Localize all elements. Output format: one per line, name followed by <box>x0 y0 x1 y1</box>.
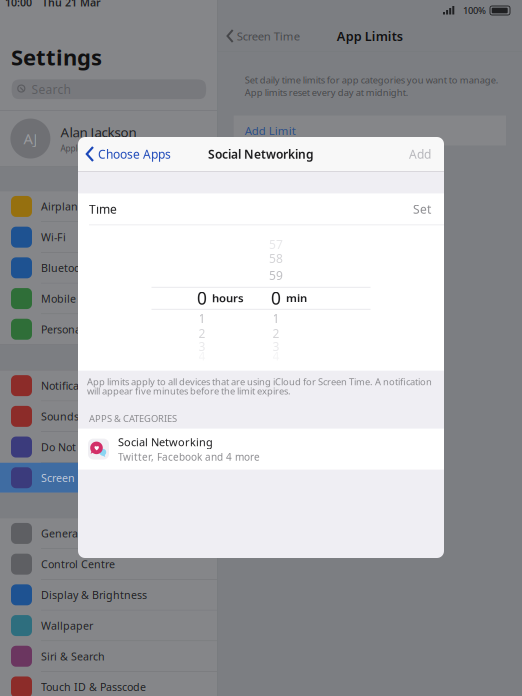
button[interactable]: Social Networking <box>78 429 444 470</box>
staticText: Bluetooth <box>41 261 91 275</box>
button[interactable]: Notifications <box>0 371 217 401</box>
staticText: Twitter, Facebook and 4 more <box>118 450 260 463</box>
staticText: General <box>41 526 81 541</box>
staticText: Choose Apps <box>98 146 171 162</box>
staticText: Personal Hotspot <box>41 322 127 336</box>
staticText: 4 <box>198 348 205 364</box>
staticText: Search <box>32 81 71 97</box>
staticText: 1 <box>198 310 205 326</box>
staticText: Alan Jackson <box>60 123 136 141</box>
staticText: Airplane Mode <box>41 199 116 214</box>
button[interactable]: Add Limit <box>218 115 522 145</box>
staticText: 10:00 <box>5 0 32 9</box>
staticText: Add Limit <box>245 123 296 138</box>
button[interactable]: Control Centre <box>0 549 217 579</box>
staticText: Screen Time <box>41 471 103 485</box>
staticText: Set <box>413 201 431 217</box>
staticText: 100% <box>463 4 486 17</box>
staticText: AJ <box>23 129 37 148</box>
staticText: Settings <box>11 42 102 71</box>
staticText: App limits apply to all devices that are… <box>87 375 432 388</box>
button[interactable]: Screen Time <box>218 21 306 51</box>
staticText: Thu 21 Mar <box>42 0 101 9</box>
staticText: App Limits <box>337 28 403 44</box>
button[interactable]: General <box>0 518 217 548</box>
staticText: Do Not Disturb <box>41 440 117 454</box>
staticText: Control Centre <box>41 557 115 571</box>
button[interactable]: Sounds <box>0 401 217 431</box>
staticText: hours <box>212 290 244 305</box>
staticText: 0 <box>197 286 207 309</box>
staticText: Wi-Fi <box>41 230 66 244</box>
staticText: Notifications <box>41 379 104 393</box>
staticText: 58 <box>269 250 283 266</box>
staticText: Display & Brightness <box>41 588 147 602</box>
button[interactable]: Siri & Search <box>0 641 217 671</box>
button[interactable]: Mobile Data <box>0 283 217 313</box>
button[interactable]: Screen Time <box>0 463 217 493</box>
staticText: Social Networking <box>118 435 213 449</box>
staticText: Set daily time limits for app categories… <box>245 74 499 98</box>
staticText: Sounds <box>41 409 79 423</box>
button[interactable]: Choose Apps <box>78 137 179 171</box>
staticText: 2 <box>272 325 279 341</box>
button[interactable]: Time <box>78 194 444 225</box>
staticText: 1 <box>272 310 279 326</box>
staticText: will appear five minutes before the limi… <box>87 385 291 397</box>
staticText: Screen Time <box>237 28 300 43</box>
button[interactable]: Personal Hotspot <box>0 314 217 344</box>
staticText: Touch ID & Passcode <box>41 680 146 694</box>
button[interactable]: Bluetooth <box>0 253 217 283</box>
button[interactable]: Touch ID & Passcode <box>0 672 217 696</box>
staticText: Mobile Data <box>41 291 103 306</box>
staticText: 59 <box>269 267 283 283</box>
button[interactable]: Display & Brightness <box>0 580 217 610</box>
staticText: min <box>286 290 307 305</box>
staticText: 3 <box>272 338 279 354</box>
staticText: 57 <box>269 236 283 252</box>
staticText: Social Networking <box>208 146 314 162</box>
button[interactable]: Do Not Disturb <box>0 432 217 462</box>
button[interactable]: AJ <box>0 111 217 166</box>
button[interactable]: Wallpaper <box>0 610 217 640</box>
staticText: Time <box>89 201 117 217</box>
staticText: Apple ID, iCloud, iTunes & App Store <box>60 143 198 154</box>
staticText: Siri & Search <box>41 649 105 663</box>
button[interactable]: Wi-Fi <box>0 222 217 252</box>
staticText: 3 <box>198 338 205 354</box>
staticText: 0 <box>271 286 281 309</box>
staticText: Add <box>409 146 431 162</box>
staticText: APPS & CATEGORIES <box>89 412 177 425</box>
button[interactable]: Airplane Mode <box>0 191 217 221</box>
staticText: 4 <box>272 348 279 364</box>
staticText: Wallpaper <box>41 618 93 633</box>
staticText: 2 <box>198 325 205 341</box>
button[interactable]: Add <box>399 137 444 171</box>
